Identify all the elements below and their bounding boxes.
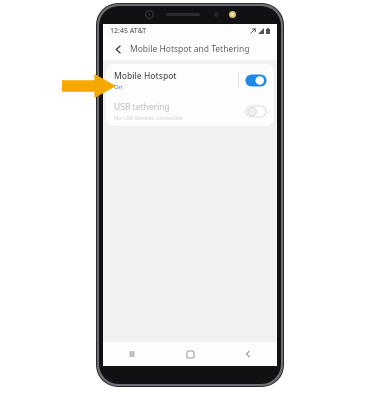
staticText: Mobile Hotspot and Tethering — [130, 43, 250, 55]
button[interactable]: Mobile Hotspot — [106, 64, 274, 96]
other: Pointer arrow highlighting Mobile Hotspo… — [62, 74, 116, 98]
staticText: On — [114, 83, 123, 91]
button[interactable]: USB tethering — [106, 96, 274, 126]
button[interactable]: Back — [110, 41, 126, 57]
staticText: No USB devices connected — [114, 114, 183, 121]
staticText: 12:45 AT&T — [110, 26, 147, 36]
button[interactable]: Turn off Mobile Hotspot — [246, 75, 266, 86]
button[interactable]: Turn on USB tethering — [246, 106, 266, 117]
button[interactable]: Back — [219, 342, 277, 366]
button[interactable]: Recent apps — [103, 342, 161, 366]
button[interactable]: Home — [161, 342, 219, 366]
staticText: Mobile Hotspot — [114, 70, 177, 82]
staticText: USB tethering — [114, 101, 170, 113]
